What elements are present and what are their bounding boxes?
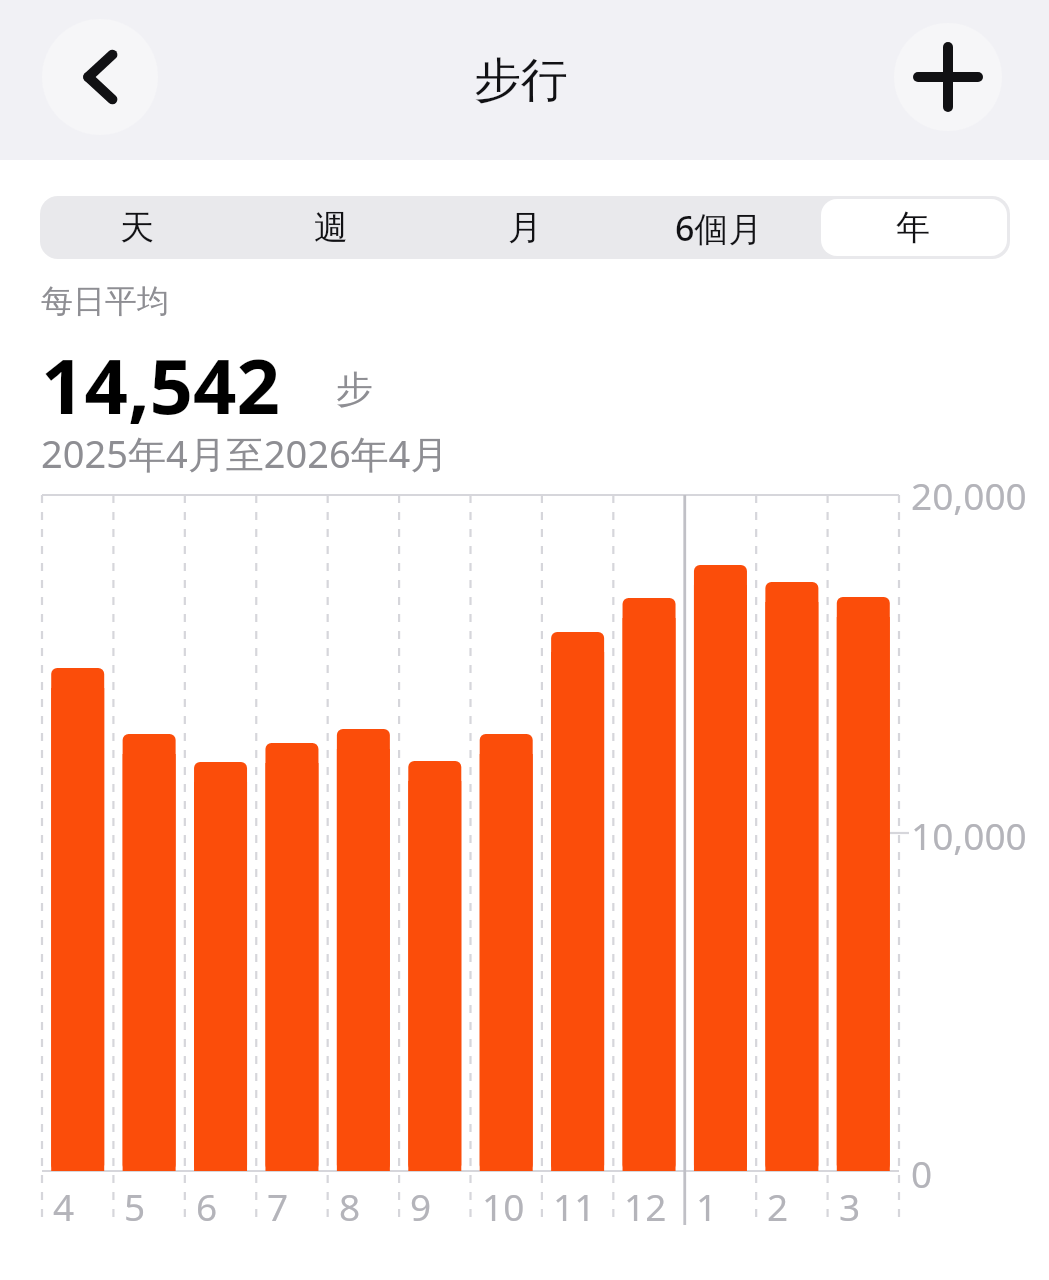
staticText: 14,542 <box>41 333 281 437</box>
button[interactable]: Back <box>42 19 158 135</box>
button[interactable]: 月 <box>428 196 622 259</box>
button[interactable]: 年 <box>816 196 1010 259</box>
staticText: 3 <box>839 1181 861 1231</box>
button[interactable]: 週 <box>234 196 428 259</box>
staticText: 月 <box>508 206 542 249</box>
staticText: 每日平均 <box>41 281 169 321</box>
staticText: 0 <box>911 1148 933 1198</box>
staticText: 9 <box>410 1181 432 1231</box>
staticText: 2025年4月至2026年4月 <box>41 427 449 479</box>
staticText: 6個月 <box>675 205 763 251</box>
staticText: 6 <box>196 1181 218 1231</box>
staticText: 天 <box>120 206 154 249</box>
staticText: 11 <box>553 1181 596 1231</box>
staticText: 10,000 <box>911 810 1027 860</box>
staticText: 週 <box>314 206 348 249</box>
staticText: 8 <box>339 1181 361 1231</box>
staticText: 5 <box>124 1181 146 1231</box>
staticText: 1 <box>696 1181 718 1231</box>
staticText: 年 <box>896 206 930 249</box>
staticText: 12 <box>624 1181 667 1231</box>
staticText: 20,000 <box>911 470 1027 520</box>
button[interactable]: 6個月 <box>622 196 816 259</box>
button[interactable]: 天 <box>40 196 234 259</box>
staticText: 7 <box>267 1181 289 1231</box>
staticText: 4 <box>53 1181 75 1231</box>
staticText: 步 <box>336 366 373 413</box>
staticText: 10 <box>482 1181 525 1231</box>
button[interactable]: Add <box>894 23 1002 131</box>
staticText: 2 <box>767 1181 789 1231</box>
staticText: 步行 <box>474 51 568 110</box>
